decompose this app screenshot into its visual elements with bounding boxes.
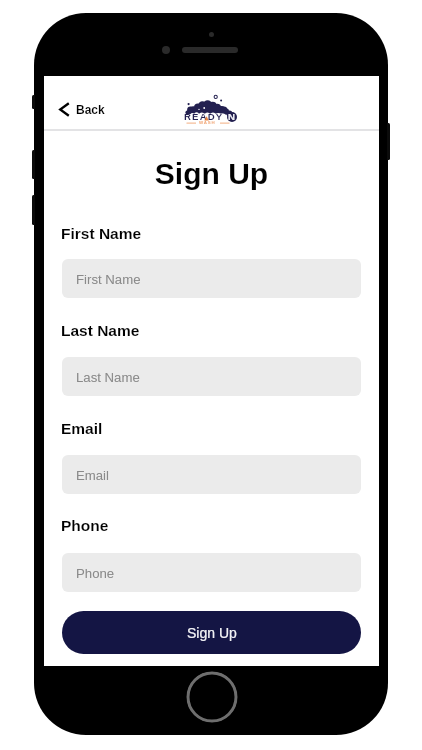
staticText: Back	[76, 103, 105, 116]
staticText: WASH	[199, 120, 216, 125]
button[interactable]: Email	[62, 455, 361, 494]
button[interactable]: First Name	[62, 259, 361, 298]
staticText: First Name	[61, 225, 142, 242]
button[interactable]: Last Name	[62, 357, 361, 396]
staticText: Email	[76, 468, 109, 483]
staticText: Sign Up	[187, 625, 237, 641]
staticText: Email	[61, 420, 103, 437]
staticText: Phone	[76, 566, 115, 581]
staticText: Phone	[61, 517, 109, 534]
button[interactable]: Back	[59, 96, 107, 122]
staticText: Last Name	[76, 370, 140, 385]
button[interactable]: Sign Up	[62, 611, 361, 654]
staticText: Sign Up	[44, 157, 379, 191]
staticText: Last Name	[61, 322, 140, 339]
staticText: READY	[184, 111, 224, 122]
staticText: N	[228, 111, 235, 122]
button[interactable]: Home	[186, 671, 238, 723]
staticText: First Name	[76, 272, 141, 287]
button[interactable]: Phone	[62, 553, 361, 592]
